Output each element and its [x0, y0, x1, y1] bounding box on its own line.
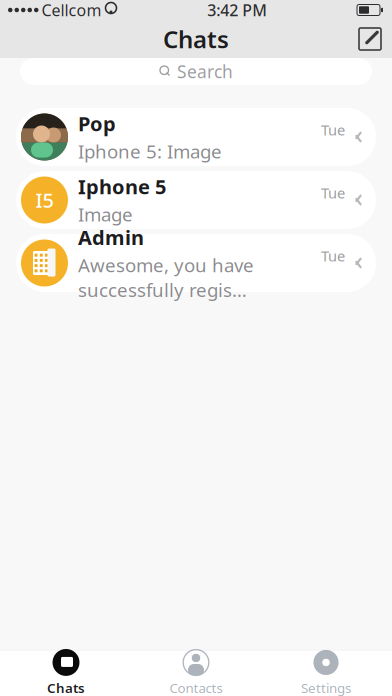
button[interactable]: Search	[20, 58, 372, 85]
staticText: Search	[177, 60, 233, 83]
staticText: Pop	[78, 110, 116, 137]
staticText: Image	[78, 202, 133, 227]
staticText: Cellcom	[41, 0, 101, 21]
staticText: 3:42 PM	[207, 0, 267, 21]
staticText: Contacts	[169, 679, 222, 696]
staticText: I5	[35, 187, 53, 213]
staticText: Chats	[163, 23, 229, 55]
staticText: Tue	[321, 120, 345, 139]
button[interactable]: Pop	[16, 108, 376, 166]
button[interactable]: Contacts	[131, 650, 261, 695]
staticText: Iphone 5: Image	[78, 139, 222, 164]
button[interactable]: Chats	[1, 650, 131, 695]
staticText: Chats	[47, 679, 85, 696]
staticText: Iphone 5	[78, 173, 166, 200]
staticText: Tue	[321, 183, 345, 202]
staticText: Settings	[301, 679, 351, 696]
staticText: Awesome, you have successfully regis…	[78, 252, 254, 302]
button[interactable]: Admin	[16, 234, 376, 292]
button[interactable]: New message	[348, 20, 392, 58]
button[interactable]: I5	[16, 171, 376, 229]
staticText: Tue	[321, 246, 345, 265]
staticText: Admin	[78, 224, 144, 250]
button[interactable]: Settings	[261, 650, 391, 695]
